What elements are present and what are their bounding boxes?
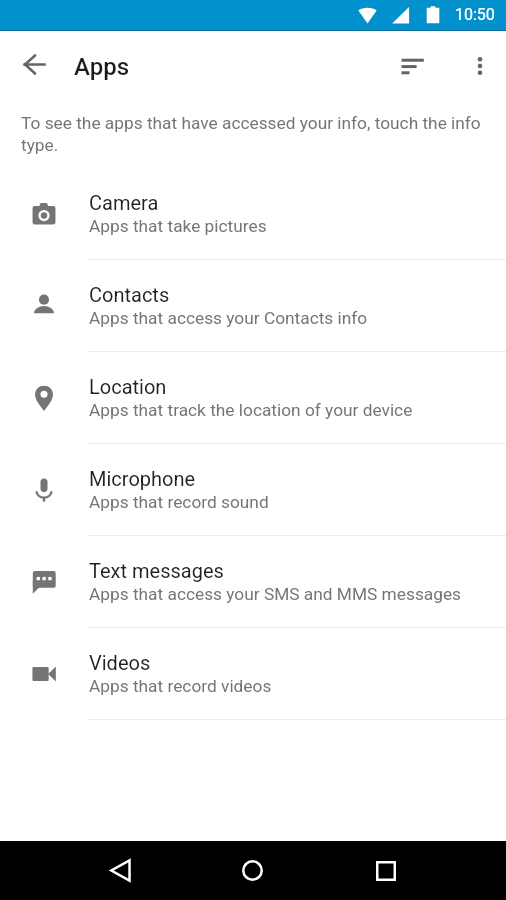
staticText: Apps that record sound <box>89 492 269 512</box>
button[interactable]: Back <box>11 41 58 88</box>
staticText: 10:50 <box>455 5 495 24</box>
staticText: Apps <box>74 53 130 81</box>
button[interactable]: Recent apps <box>362 847 409 894</box>
staticText: Apps that record videos <box>89 676 272 696</box>
button[interactable]: More options <box>456 42 503 89</box>
staticText: Contacts <box>89 283 170 306</box>
staticText: Videos <box>89 651 151 674</box>
staticText: Camera <box>89 191 159 214</box>
staticText: Apps that track the location of your dev… <box>89 400 413 420</box>
button[interactable]: Home <box>229 847 276 894</box>
staticText: Location <box>89 375 167 398</box>
staticText: Apps that access your SMS and MMS messag… <box>89 584 462 604</box>
staticText: To see the apps that have accessed your … <box>21 113 484 156</box>
button[interactable]: Microphone <box>0 444 506 536</box>
staticText: Apps that access your Contacts info <box>89 308 368 328</box>
staticText: Microphone <box>89 467 196 490</box>
button[interactable]: Back <box>97 847 144 894</box>
staticText: Text messages <box>89 559 224 582</box>
button[interactable]: Location <box>0 352 506 444</box>
button[interactable]: Sort <box>389 42 436 89</box>
button[interactable]: Text messages <box>0 536 506 628</box>
staticText: Apps that take pictures <box>89 216 267 236</box>
button[interactable]: Camera <box>0 168 506 260</box>
button[interactable]: Contacts <box>0 260 506 352</box>
button[interactable]: Videos <box>0 628 506 720</box>
